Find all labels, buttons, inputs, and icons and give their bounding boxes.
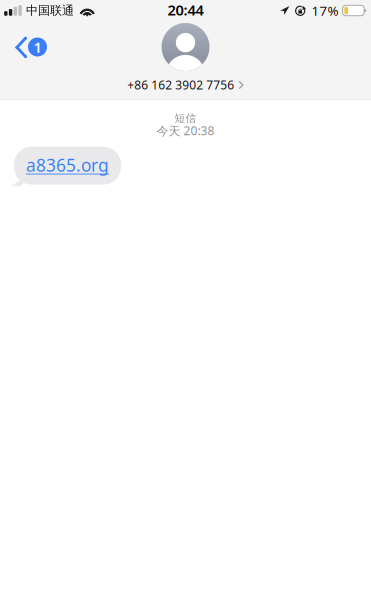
staticText: 17% bbox=[311, 2, 338, 19]
button[interactable]: Back bbox=[0, 32, 55, 62]
staticText: 中国联通 bbox=[26, 3, 74, 18]
staticText: 20:44 bbox=[167, 0, 203, 19]
staticText: a8365.org bbox=[26, 154, 109, 177]
staticText: 短信 bbox=[174, 112, 196, 125]
button[interactable]: +86 162 3902 7756 bbox=[127, 23, 244, 93]
staticText: 今天 20:38 bbox=[156, 123, 214, 139]
staticText: +86 162 3902 7756 bbox=[127, 77, 234, 93]
staticText: 1 bbox=[33, 37, 41, 57]
